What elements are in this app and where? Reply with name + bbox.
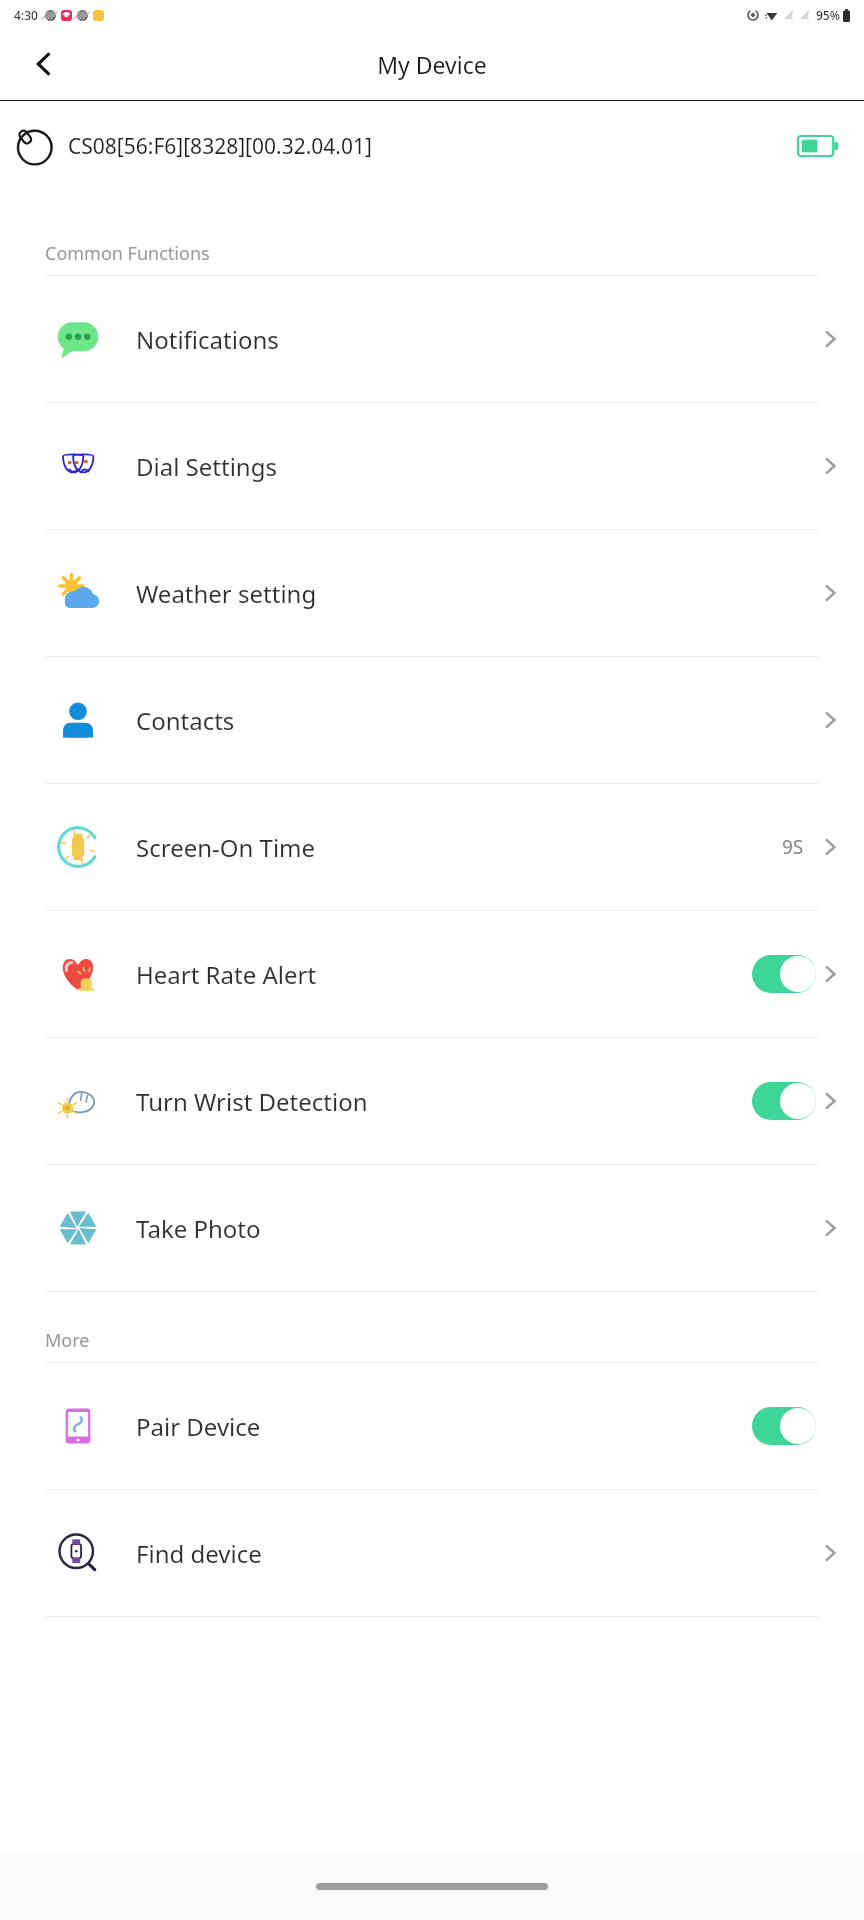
staticText: 4:30 bbox=[14, 7, 38, 23]
staticText: Turn Wrist Detection bbox=[136, 1085, 368, 1118]
button[interactable]: Screen-On Time bbox=[0, 784, 864, 910]
staticText: Find device bbox=[136, 1537, 262, 1570]
staticText: Dial Settings bbox=[136, 450, 277, 483]
staticText: Pair Device bbox=[136, 1410, 261, 1443]
staticText: Notifications bbox=[136, 323, 279, 356]
staticText: More bbox=[45, 1328, 90, 1353]
button[interactable]: Heart Rate Alert toggle bbox=[752, 955, 816, 993]
button[interactable]: Dial Settings bbox=[0, 403, 864, 529]
staticText: Contacts bbox=[136, 704, 235, 737]
button[interactable]: Pair Device bbox=[0, 1363, 864, 1489]
staticText: Screen-On Time bbox=[136, 831, 316, 864]
staticText: Common Functions bbox=[45, 241, 210, 266]
staticText: 95% bbox=[816, 7, 840, 23]
staticText: Weather setting bbox=[136, 577, 317, 610]
button[interactable]: Pair Device toggle bbox=[752, 1407, 816, 1445]
staticText: CS08[56:F6][8328][00.32.04.01] bbox=[68, 132, 372, 161]
button[interactable]: Turn Wrist Detection toggle bbox=[752, 1082, 816, 1120]
button[interactable]: Take Photo bbox=[0, 1165, 864, 1291]
button[interactable]: Notifications bbox=[0, 276, 864, 402]
button[interactable]: Contacts bbox=[0, 657, 864, 783]
button[interactable]: Back bbox=[22, 42, 66, 86]
staticText: Take Photo bbox=[136, 1212, 261, 1245]
button[interactable]: Turn Wrist Detection bbox=[0, 1038, 864, 1164]
button[interactable]: Find device bbox=[0, 1490, 864, 1616]
button[interactable]: Weather setting bbox=[0, 530, 864, 656]
button[interactable]: CS08[56:F6][8328][00.32.04.01] bbox=[0, 101, 864, 191]
staticText: My Device bbox=[377, 49, 487, 80]
button[interactable]: Heart Rate Alert bbox=[0, 911, 864, 1037]
staticText: 9S bbox=[782, 834, 804, 860]
staticText: Heart Rate Alert bbox=[136, 958, 317, 991]
